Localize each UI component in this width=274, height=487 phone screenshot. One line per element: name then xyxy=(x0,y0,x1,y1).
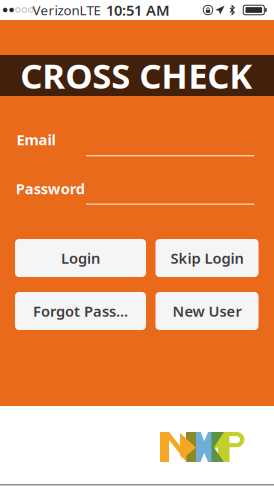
button[interactable]: Forgot Pass... xyxy=(15,292,146,330)
staticText: 10:51 AM xyxy=(106,0,170,20)
staticText: Email xyxy=(16,130,55,149)
staticText: Skip Login xyxy=(170,248,243,268)
staticText: CROSS CHECK xyxy=(20,52,252,98)
staticText: Password xyxy=(16,179,85,198)
button[interactable]: Skip Login xyxy=(155,239,258,277)
staticText: Verizon xyxy=(32,1,79,19)
staticText: LTE xyxy=(79,1,100,19)
staticText: Login xyxy=(61,248,100,268)
staticText: New User xyxy=(172,301,241,321)
staticText: Forgot Pass... xyxy=(33,301,128,321)
button[interactable]: Login xyxy=(15,239,146,277)
button[interactable]: New User xyxy=(155,292,258,330)
